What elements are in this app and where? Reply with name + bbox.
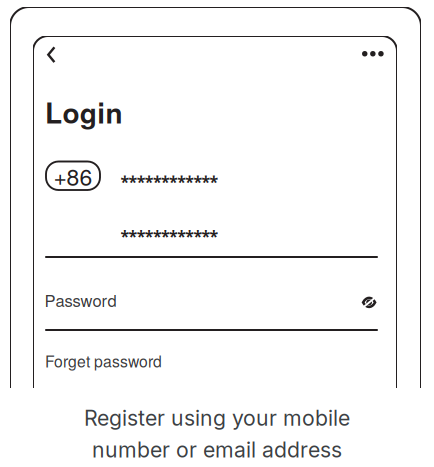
button[interactable]: +86 [46,161,100,190]
button[interactable]: More options [356,45,390,62]
staticText: Password [44,288,116,312]
button[interactable]: Back [44,42,66,67]
staticText: Login [45,92,123,132]
staticText: Forget password [45,349,162,372]
staticText: Register using your mobile [84,405,350,431]
staticText: ************ [120,170,219,192]
staticText: number or email address [92,437,342,463]
staticText: ************ [120,225,219,247]
button[interactable]: Forget password [45,349,162,372]
button[interactable]: Show password [356,291,382,314]
staticText: +86 [53,159,92,192]
